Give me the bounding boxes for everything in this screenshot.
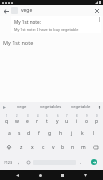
- staticText: q: [5, 118, 9, 125]
- staticText: vegetable: [71, 104, 91, 110]
- button[interactable]: Enter: [85, 155, 102, 169]
- staticText: 2: [16, 114, 18, 118]
- button[interactable]: f: [34, 126, 44, 140]
- staticText: 3: [27, 114, 29, 118]
- button[interactable]: g: [44, 126, 55, 140]
- staticText: s: [18, 130, 21, 137]
- staticText: 0: [96, 114, 98, 118]
- staticText: o: [85, 118, 89, 125]
- staticText: 5: [46, 114, 48, 118]
- staticText: 9: [86, 114, 88, 118]
- staticText: r: [36, 118, 39, 125]
- button[interactable]: l: [88, 126, 99, 140]
- button[interactable]: vegetable: [66, 102, 96, 112]
- button[interactable]: j: [66, 126, 77, 140]
- button[interactable]: Home: [36, 171, 45, 180]
- staticText: p: [95, 118, 99, 125]
- button[interactable]: d: [24, 126, 34, 140]
- staticText: My 1st note: I have to buy vegetable: [14, 27, 79, 32]
- button[interactable]: 6: [52, 112, 62, 126]
- staticText: ?123: [4, 160, 13, 165]
- staticText: 6: [57, 114, 59, 118]
- button[interactable]: Voice input: [96, 104, 102, 110]
- button[interactable]: h: [55, 126, 66, 140]
- button[interactable]: Clear: [93, 7, 101, 15]
- button[interactable]: Back: [2, 7, 10, 15]
- staticText: l: [93, 130, 95, 137]
- button[interactable]: Shift: [1, 140, 16, 154]
- staticText: b: [61, 144, 65, 151]
- staticText: 1: [6, 114, 8, 118]
- staticText: v: [52, 144, 55, 151]
- staticText: n: [71, 144, 75, 151]
- button[interactable]: vege: [7, 102, 36, 112]
- staticText: vege: [21, 7, 33, 14]
- button[interactable]: My 1st note:: [11, 16, 101, 33]
- staticText: a: [8, 130, 11, 137]
- button[interactable]: x: [27, 140, 38, 154]
- staticText: t: [46, 118, 48, 125]
- button[interactable]: Backspace: [88, 140, 102, 154]
- button[interactable]: b: [58, 140, 68, 154]
- staticText: My 1st note:: [14, 19, 41, 25]
- staticText: My 1st note: [3, 39, 34, 46]
- staticText: 7: [66, 114, 68, 118]
- button[interactable]: More suggestions: [1, 104, 7, 110]
- button[interactable]: a: [4, 126, 14, 140]
- button[interactable]: .: [76, 155, 85, 169]
- staticText: x: [31, 144, 34, 151]
- staticText: m: [81, 144, 86, 151]
- button[interactable]: Emoji: [23, 155, 33, 169]
- staticText: 8: [76, 114, 78, 118]
- button[interactable]: Hide keyboard: [81, 171, 90, 180]
- button[interactable]: z: [16, 140, 27, 154]
- button[interactable]: m: [78, 140, 88, 154]
- staticText: z: [20, 144, 23, 151]
- button[interactable]: 7: [62, 112, 72, 126]
- staticText: 4: [37, 114, 39, 118]
- staticText: k: [81, 130, 84, 137]
- staticText: d: [27, 130, 31, 137]
- button[interactable]: s: [14, 126, 24, 140]
- staticText: e: [26, 118, 29, 125]
- button[interactable]: ?123: [1, 155, 15, 169]
- button[interactable]: 0: [92, 112, 102, 126]
- staticText: i: [76, 118, 78, 125]
- button[interactable]: v: [48, 140, 58, 154]
- staticText: ,: [18, 159, 20, 165]
- button[interactable]: 1: [1, 112, 12, 126]
- staticText: vegetables: [40, 104, 62, 110]
- button[interactable]: k: [77, 126, 88, 140]
- staticText: f: [38, 130, 40, 137]
- button[interactable]: vegetables: [36, 102, 66, 112]
- staticText: u: [65, 118, 69, 125]
- button[interactable]: n: [68, 140, 78, 154]
- staticText: h: [59, 130, 63, 137]
- button[interactable]: c: [38, 140, 48, 154]
- staticText: vege: [17, 104, 27, 110]
- button[interactable]: Back: [13, 171, 22, 180]
- staticText: j: [71, 130, 73, 137]
- staticText: .: [80, 159, 82, 165]
- button[interactable]: Recents: [58, 171, 67, 180]
- button[interactable]: ,: [15, 155, 23, 169]
- button[interactable]: 5: [42, 112, 52, 126]
- button[interactable]: 2: [12, 112, 22, 126]
- button[interactable]: 8: [72, 112, 82, 126]
- button[interactable]: 4: [32, 112, 42, 126]
- staticText: w: [15, 118, 19, 125]
- button[interactable]: 3: [22, 112, 32, 126]
- staticText: c: [42, 144, 45, 151]
- staticText: g: [48, 130, 52, 137]
- button[interactable]: 9: [82, 112, 92, 126]
- staticText: y: [56, 118, 59, 125]
